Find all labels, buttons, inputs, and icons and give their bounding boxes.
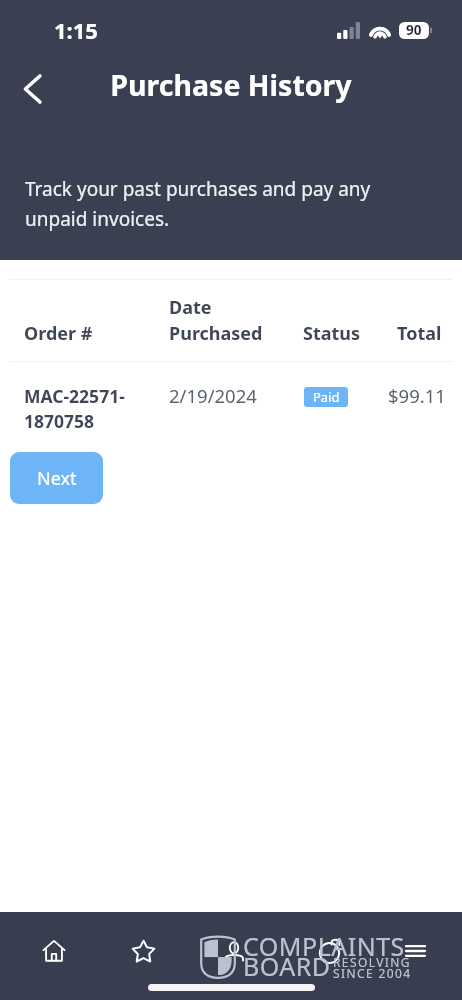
staticText: SINCE 2004 bbox=[333, 965, 412, 981]
button[interactable]: Back bbox=[13, 69, 53, 109]
staticText: Track your past purchases and pay any un… bbox=[25, 176, 371, 231]
staticText: COMPLAINTS bbox=[243, 929, 405, 963]
staticText: Order # bbox=[24, 321, 93, 346]
staticText: 2/19/2024 bbox=[169, 383, 257, 408]
button[interactable]: Paid bbox=[304, 387, 348, 407]
staticText: Date Purchased bbox=[169, 295, 263, 346]
staticText: Status bbox=[303, 321, 361, 346]
staticText: 1:15 bbox=[54, 15, 98, 45]
button[interactable]: Favorites bbox=[120, 928, 166, 974]
button[interactable]: Profile bbox=[211, 928, 257, 974]
staticText: Next bbox=[37, 466, 77, 491]
staticText: Total bbox=[397, 321, 442, 346]
staticText: BOARD bbox=[243, 949, 331, 983]
button[interactable]: Menu bbox=[392, 928, 438, 974]
staticText: MAC-22571- 1870758 bbox=[24, 384, 125, 433]
staticText: 90 bbox=[406, 21, 422, 39]
button[interactable]: Next bbox=[10, 452, 103, 504]
staticText: RESOLVING bbox=[333, 954, 411, 970]
staticText: $99.11 bbox=[388, 383, 446, 408]
button[interactable]: Orders bbox=[306, 928, 352, 974]
button[interactable]: Home bbox=[31, 928, 77, 974]
staticText: Purchase History bbox=[0, 66, 462, 105]
staticText: Paid bbox=[313, 388, 340, 406]
